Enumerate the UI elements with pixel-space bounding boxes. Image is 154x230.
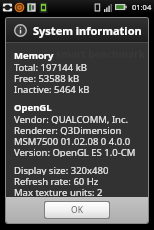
staticText: Inactive: 5464 kB <box>14 83 90 94</box>
staticText: 01:04 <box>132 2 152 12</box>
staticText: Vendor: QUALCOMM, Inc. <box>14 113 129 124</box>
staticText: Refresh rate: 60 Hz <box>14 175 99 186</box>
staticText: Free: 53588 kB <box>14 72 80 83</box>
staticText: OpenGL <box>14 101 52 113</box>
staticText: Total: 197144 kB <box>14 61 87 72</box>
staticText: Version: OpenGL ES 1.0-CM <box>14 146 136 157</box>
staticText: Display size: 320x480 <box>14 164 109 175</box>
staticText: Max texture units: 2 <box>14 186 103 197</box>
staticText: System information <box>33 23 142 38</box>
button[interactable]: OK <box>45 202 109 218</box>
staticText: Memory <box>14 49 54 61</box>
staticText: MSM7500 01.02.08 0 4.0.0 <box>14 135 131 146</box>
staticText: Renderer: Q3Dimension <box>14 124 122 135</box>
staticText: OK <box>71 204 83 216</box>
